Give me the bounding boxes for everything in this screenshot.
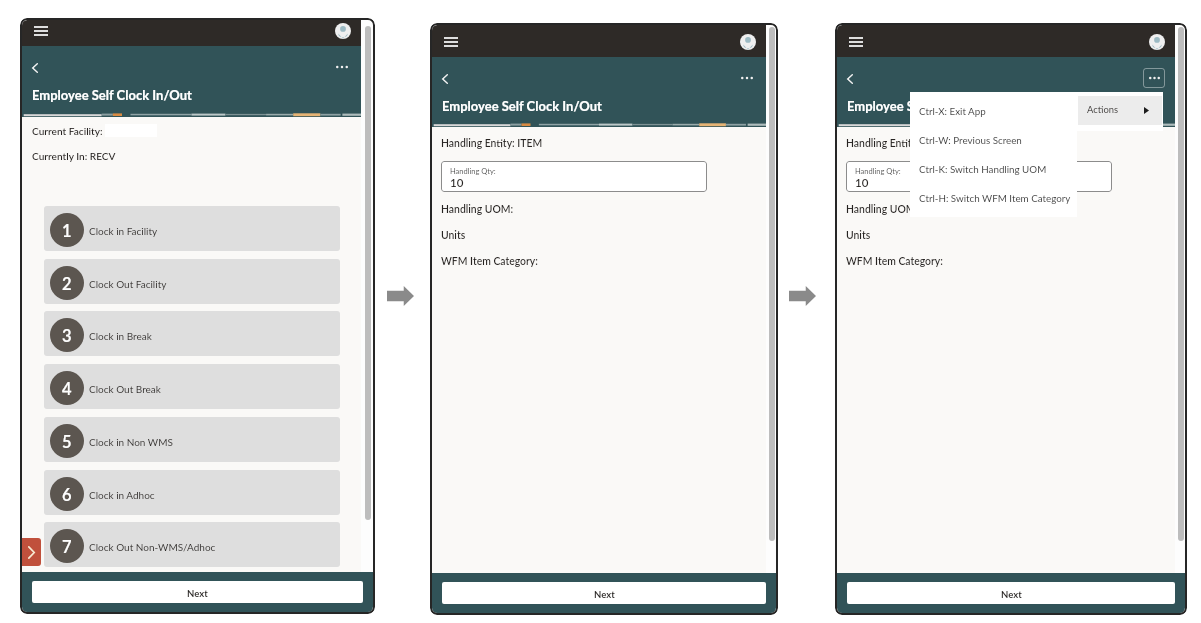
staticText: Clock Out Break: [89, 383, 161, 395]
staticText: Employee Self Clock In/Out: [32, 87, 192, 103]
button[interactable]: Menu: [846, 31, 866, 52]
staticText: Next: [187, 588, 208, 599]
staticText: Clock Out Non-WMS/Adhoc: [89, 541, 216, 553]
button[interactable]: Next: [847, 582, 1175, 604]
staticText: Handling UOM:: [846, 203, 919, 215]
staticText: Ctrl-X: Exit App: [919, 105, 986, 117]
staticText: Employee Self Clock In/Out: [847, 98, 1007, 114]
button[interactable]: 7: [44, 522, 340, 567]
button[interactable]: Account: [738, 31, 758, 52]
staticText: Currently In: RECV: [32, 150, 116, 162]
button[interactable]: Ctrl-W: Previous Screen: [910, 128, 1077, 157]
button[interactable]: Next: [442, 582, 766, 604]
staticText: Clock in Adhoc: [89, 489, 155, 501]
staticText: Clock in Non WMS: [89, 436, 173, 448]
button[interactable]: Back: [436, 70, 454, 88]
staticText: 7: [62, 537, 72, 557]
button[interactable]: 4: [44, 364, 340, 409]
button[interactable]: Next: [32, 581, 363, 603]
staticText: WFM Item Category:: [846, 255, 943, 267]
staticText: Clock in Break: [89, 330, 152, 342]
button[interactable]: Menu: [441, 31, 461, 52]
staticText: Ctrl-H: Switch WFM Item Category: [919, 192, 1071, 204]
button[interactable]: 3: [44, 311, 340, 356]
staticText: Actions: [1087, 104, 1119, 115]
button[interactable]: Actions: [1078, 96, 1162, 125]
staticText: Handling UOM:: [441, 203, 514, 215]
staticText: 1: [62, 221, 72, 241]
button[interactable]: Handling Qty:: [846, 161, 1112, 192]
staticText: Handling Entity: ITEM: [846, 137, 948, 149]
button[interactable]: Ctrl-X: Exit App: [910, 99, 1077, 128]
staticText: Handling Entity: ITEM: [441, 137, 543, 149]
staticText: Current Facility:: [32, 125, 103, 137]
staticText: Ctrl-W: Previous Screen: [919, 134, 1022, 146]
button[interactable]: Back: [841, 70, 859, 88]
staticText: Clock Out Facility: [89, 278, 167, 290]
staticText: 10: [855, 176, 869, 190]
staticText: Handling Qty:: [855, 167, 901, 176]
staticText: Next: [1001, 589, 1022, 600]
button[interactable]: More options: [1143, 68, 1165, 88]
button[interactable]: More options: [332, 57, 352, 77]
button[interactable]: 1: [44, 206, 340, 251]
button[interactable]: Account: [1147, 31, 1167, 52]
staticText: Next: [594, 589, 615, 600]
button[interactable]: 5: [44, 417, 340, 462]
staticText: 6: [62, 485, 72, 505]
staticText: Units: [846, 229, 871, 241]
staticText: Units: [441, 229, 466, 241]
staticText: WFM Item Category:: [441, 255, 538, 267]
staticText: Employee Self Clock In/Out: [442, 98, 602, 114]
staticText: 2: [62, 274, 72, 294]
staticText: 10: [450, 176, 464, 190]
button[interactable]: More options: [737, 68, 757, 88]
button[interactable]: Menu: [31, 20, 51, 41]
staticText: Handling Qty:: [450, 167, 496, 176]
button[interactable]: Handling Qty:: [441, 161, 707, 192]
button[interactable]: Back: [26, 59, 44, 77]
staticText: 4: [62, 379, 72, 399]
button[interactable]: 6: [44, 470, 340, 515]
button[interactable]: Account: [333, 20, 353, 41]
staticText: 5: [62, 432, 72, 452]
button[interactable]: Ctrl-H: Switch WFM Item Category: [910, 186, 1077, 215]
staticText: 3: [62, 326, 72, 346]
button[interactable]: 2: [44, 259, 340, 304]
staticText: Clock in Facility: [89, 225, 158, 237]
button[interactable]: Expand panel: [22, 538, 41, 566]
button[interactable]: Ctrl-K: Switch Handling UOM: [910, 157, 1077, 186]
staticText: Ctrl-K: Switch Handling UOM: [919, 163, 1047, 175]
